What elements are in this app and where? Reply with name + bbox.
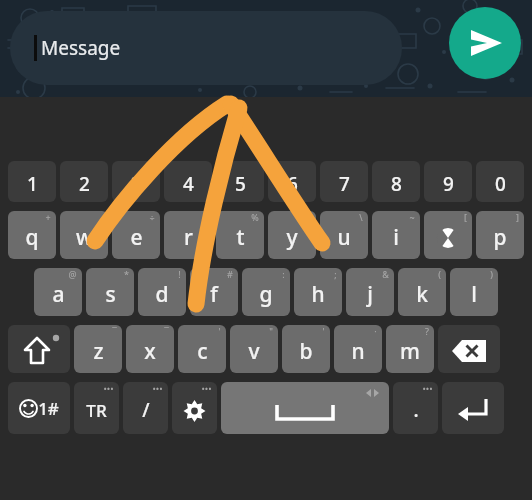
button[interactable]: w — [60, 211, 108, 259]
staticText: u — [337, 223, 351, 252]
staticText: r — [184, 223, 193, 252]
button[interactable]: 6 — [268, 161, 316, 202]
button[interactable]: Settings — [172, 382, 217, 434]
button[interactable]: & — [346, 268, 394, 316]
staticText: 9 — [443, 171, 454, 197]
staticText: ' — [218, 325, 221, 337]
button[interactable]: ] — [476, 211, 524, 259]
staticText: ••• — [103, 382, 114, 394]
staticText: ( — [438, 268, 441, 280]
button[interactable]: ••• — [393, 382, 438, 434]
button[interactable]: ••• — [74, 382, 119, 434]
button[interactable]: ! — [138, 268, 186, 316]
staticText: ¯ — [112, 325, 117, 337]
button[interactable]: + — [8, 211, 56, 259]
staticText: h — [311, 280, 325, 309]
staticText: ••• — [422, 382, 433, 394]
button[interactable]: · — [334, 325, 382, 373]
staticText: * — [124, 268, 129, 280]
button[interactable]: ¯ — [126, 325, 174, 373]
staticText: : — [282, 268, 285, 280]
button[interactable]: y — [268, 211, 316, 259]
button[interactable]: ÷ — [112, 211, 160, 259]
button[interactable]: ( — [398, 268, 446, 316]
button[interactable]: @ — [34, 268, 82, 316]
staticText: m — [400, 337, 420, 366]
staticText: t — [236, 223, 245, 252]
staticText: 4 — [183, 171, 194, 197]
staticText: j — [367, 280, 373, 309]
staticText: ; — [334, 268, 337, 280]
staticText: & — [382, 268, 389, 280]
button[interactable]: * — [86, 268, 134, 316]
staticText: 1# — [38, 397, 59, 420]
button[interactable]: : — [242, 268, 290, 316]
staticText: z — [93, 337, 104, 366]
button[interactable]: Space — [221, 382, 389, 434]
button[interactable]: Enter — [442, 382, 504, 434]
button[interactable]: 4 — [164, 161, 212, 202]
button[interactable]: Letter o — [424, 211, 472, 259]
staticText: v — [248, 337, 260, 366]
button[interactable]: Shift — [8, 325, 70, 373]
button[interactable]: 1 — [8, 161, 56, 202]
staticText: ~ — [409, 211, 415, 223]
button[interactable]: Send — [449, 7, 521, 79]
staticText: i — [393, 223, 399, 252]
button[interactable]: ? — [386, 325, 434, 373]
staticText: [ — [464, 211, 467, 223]
staticText: n — [351, 337, 365, 366]
staticText: l — [471, 280, 477, 309]
staticText: c — [197, 337, 208, 366]
staticText: · — [374, 325, 377, 337]
staticText: x — [144, 337, 156, 366]
staticText: w — [76, 223, 93, 252]
staticText: TR — [86, 399, 107, 422]
staticText: . — [413, 397, 419, 423]
button[interactable]: ' — [178, 325, 226, 373]
button[interactable]: 5 — [216, 161, 264, 202]
button[interactable]: # — [190, 268, 238, 316]
staticText: 1 — [27, 171, 38, 197]
button[interactable]: \ — [320, 211, 368, 259]
staticText: 2 — [79, 171, 90, 197]
button[interactable]: % — [216, 211, 264, 259]
button[interactable]: ¯ — [74, 325, 122, 373]
staticText: ] — [516, 211, 519, 223]
button[interactable]: 7 — [320, 161, 368, 202]
button[interactable]: ; — [294, 268, 342, 316]
button[interactable]: 2 — [60, 161, 108, 202]
staticText: e — [130, 223, 143, 252]
button[interactable]: 0 — [476, 161, 524, 202]
staticText: ÷ — [149, 211, 155, 223]
button[interactable]: r — [164, 211, 212, 259]
staticText: k — [416, 280, 428, 309]
staticText: 6 — [287, 171, 298, 197]
staticText: 0 — [495, 171, 506, 197]
button[interactable]: " — [230, 325, 278, 373]
staticText: / — [142, 397, 150, 423]
staticText: a — [52, 280, 65, 309]
button[interactable]: 9 — [424, 161, 472, 202]
staticText: + — [45, 211, 51, 223]
staticText: q — [25, 223, 39, 252]
staticText: f — [210, 280, 218, 309]
button[interactable]: Message — [10, 11, 402, 85]
staticText: ••• — [152, 382, 163, 394]
button[interactable]: ••• — [123, 382, 168, 434]
button[interactable]: 3 — [112, 161, 160, 202]
staticText: ' — [322, 325, 325, 337]
button[interactable]: Emoji and symbols — [8, 382, 70, 434]
staticText: # — [227, 268, 233, 280]
staticText: Message — [41, 35, 121, 61]
button[interactable]: ~ — [372, 211, 420, 259]
button[interactable]: ' — [282, 325, 330, 373]
staticText: 3 — [131, 171, 142, 197]
staticText: d — [155, 280, 169, 309]
button[interactable]: Backspace — [438, 325, 500, 373]
button[interactable]: ) — [450, 268, 498, 316]
staticText: ¯ — [164, 325, 169, 337]
staticText: % — [251, 211, 259, 223]
button[interactable]: 8 — [372, 161, 420, 202]
staticText: \ — [359, 211, 363, 223]
